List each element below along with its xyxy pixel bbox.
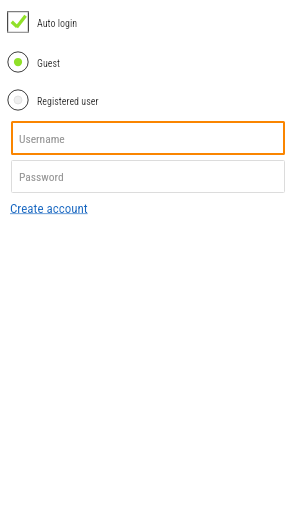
staticText: Username bbox=[19, 132, 65, 145]
button[interactable]: Create account bbox=[10, 201, 88, 216]
button[interactable]: Registered user bbox=[7, 89, 99, 111]
button[interactable]: Password bbox=[11, 160, 285, 193]
other: Auto login checked bbox=[7, 11, 29, 33]
button[interactable]: Username bbox=[11, 121, 285, 155]
staticText: Registered user bbox=[37, 96, 99, 108]
button[interactable]: Auto login checked bbox=[7, 11, 78, 33]
button[interactable]: Guest bbox=[7, 51, 60, 73]
staticText: Guest bbox=[37, 58, 60, 70]
staticText: Create account bbox=[10, 201, 88, 216]
staticText: Password bbox=[19, 170, 64, 183]
staticText: Auto login bbox=[37, 18, 78, 30]
